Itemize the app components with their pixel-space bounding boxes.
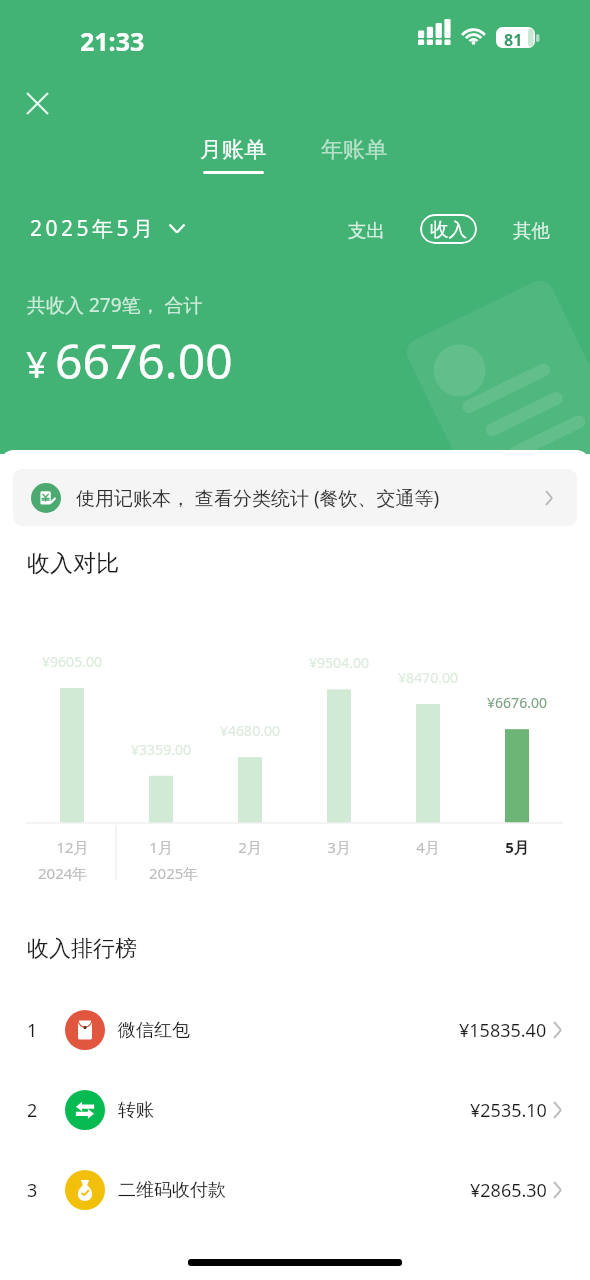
staticText: 2月 bbox=[238, 837, 262, 857]
button[interactable]: 2 bbox=[0, 1070, 590, 1150]
staticText: ¥8470.00 bbox=[398, 668, 458, 687]
button[interactable]: 收入 bbox=[420, 214, 477, 244]
staticText: 3 bbox=[27, 1178, 38, 1203]
staticText: 4月 bbox=[416, 837, 440, 857]
staticText: 年账单 bbox=[321, 136, 387, 164]
staticText: 转账 bbox=[118, 1099, 154, 1122]
staticText: 其他 bbox=[513, 219, 550, 242]
staticText: ¥9605.00 bbox=[42, 652, 102, 671]
staticText: 81 bbox=[504, 29, 523, 51]
staticText: 收入排行榜 bbox=[27, 935, 137, 963]
staticText: ¥6676.00 bbox=[487, 693, 547, 712]
staticText: 2025年5月 bbox=[30, 214, 157, 243]
staticText: 收入 bbox=[430, 218, 467, 241]
staticText: 21:33 bbox=[80, 24, 145, 58]
staticText: ¥15835.40 bbox=[459, 1018, 547, 1043]
staticText: 3月 bbox=[327, 837, 351, 857]
staticText: 2025年 bbox=[149, 863, 199, 883]
staticText: 月账单 bbox=[200, 136, 266, 164]
button[interactable]: 支出 bbox=[340, 213, 393, 248]
staticText: ¥3359.00 bbox=[131, 740, 191, 759]
staticText: ¥9504.00 bbox=[309, 653, 369, 672]
staticText: 共收入 279笔， 合计 bbox=[27, 292, 203, 318]
staticText: ¥ bbox=[26, 338, 48, 388]
button[interactable]: 1 bbox=[0, 990, 590, 1070]
button[interactable]: 其他 bbox=[505, 213, 558, 248]
staticText: 支出 bbox=[348, 219, 385, 242]
staticText: 2 bbox=[27, 1098, 38, 1123]
staticText: 12月 bbox=[56, 837, 89, 857]
staticText: 1月 bbox=[149, 837, 173, 857]
staticText: 收入对比 bbox=[27, 549, 119, 578]
staticText: 二维码收付款 bbox=[118, 1179, 226, 1202]
staticText: ¥4680.00 bbox=[220, 721, 280, 740]
button[interactable]: Close bbox=[15, 81, 59, 125]
button[interactable]: 使用记账本， 查看分类统计 (餐饮、交通等) bbox=[13, 469, 577, 526]
staticText: 1 bbox=[27, 1018, 38, 1043]
staticText: 6676.00 bbox=[55, 328, 233, 393]
button[interactable]: 3 bbox=[0, 1150, 590, 1230]
button[interactable]: 2025年5月 bbox=[30, 214, 185, 243]
staticText: 微信红包 bbox=[118, 1019, 190, 1042]
staticText: ¥2865.30 bbox=[470, 1178, 547, 1203]
staticText: ¥2535.10 bbox=[470, 1098, 547, 1123]
staticText: 2024年 bbox=[38, 863, 88, 883]
button[interactable]: 月账单 bbox=[196, 136, 270, 174]
staticText: 5月 bbox=[505, 837, 529, 857]
button[interactable]: 年账单 bbox=[317, 136, 391, 164]
staticText: 使用记账本， 查看分类统计 (餐饮、交通等) bbox=[76, 485, 440, 511]
